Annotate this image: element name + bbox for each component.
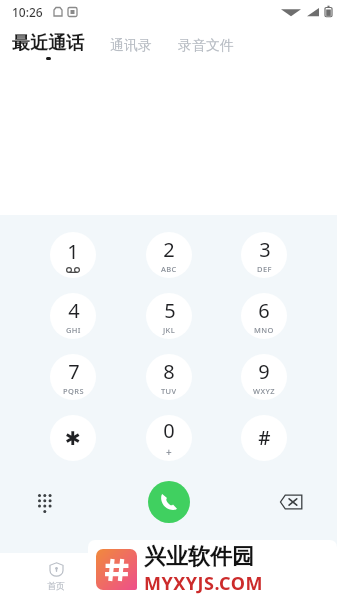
button[interactable]: 8 <box>146 354 192 400</box>
staticText: JKL <box>163 325 176 335</box>
staticText: 4 <box>68 297 80 324</box>
staticText: 10:26 <box>12 4 43 20</box>
button[interactable]: 3 <box>241 232 287 278</box>
staticText: 首页 <box>47 580 65 591</box>
button[interactable]: 录音文件 <box>176 33 236 59</box>
staticText: # <box>258 425 271 451</box>
staticText: 兴业软件园 <box>144 543 254 571</box>
staticText: 5 <box>164 297 176 324</box>
staticText: DEF <box>257 264 272 274</box>
staticText: MNO <box>254 325 274 335</box>
staticText: ABC <box>161 264 177 274</box>
button[interactable]: Call <box>148 481 190 523</box>
button[interactable]: 6 <box>241 293 287 339</box>
button[interactable]: 1 <box>50 232 96 278</box>
staticText: 录音文件 <box>178 37 234 55</box>
staticText: GHI <box>66 325 81 335</box>
staticText: 3 <box>259 236 271 263</box>
button[interactable]: 首页 <box>0 553 112 600</box>
button[interactable]: Delete <box>269 480 313 524</box>
button[interactable]: 通讯录 <box>108 33 154 59</box>
button[interactable]: 2 <box>146 232 192 278</box>
staticText: 0 <box>163 417 175 444</box>
staticText: 7 <box>68 358 80 385</box>
staticText: 2 <box>163 236 175 263</box>
button[interactable]: Keypad <box>26 482 66 522</box>
button[interactable]: 7 <box>50 354 96 400</box>
staticText: 6 <box>258 297 270 324</box>
staticText: TUV <box>161 386 177 396</box>
staticText: 9 <box>258 358 270 385</box>
staticText: MYXYJS.COM <box>144 571 264 596</box>
staticText: + <box>166 445 173 459</box>
staticText: WXYZ <box>253 386 275 396</box>
staticText: 8 <box>163 358 175 385</box>
button[interactable]: 9 <box>241 354 287 400</box>
staticText: PQRS <box>63 386 84 396</box>
button[interactable]: 0 <box>146 415 192 461</box>
staticText: 通讯录 <box>110 37 152 55</box>
button[interactable]: 5 <box>146 293 192 339</box>
button[interactable]: 4 <box>50 293 96 339</box>
staticText: ✱ <box>65 427 81 449</box>
button[interactable]: ✱ <box>50 415 96 461</box>
staticText: 1 <box>67 238 79 265</box>
staticText: 最近通话 <box>12 32 84 55</box>
button[interactable]: 最近通话 <box>10 28 86 64</box>
button[interactable]: # <box>241 415 287 461</box>
